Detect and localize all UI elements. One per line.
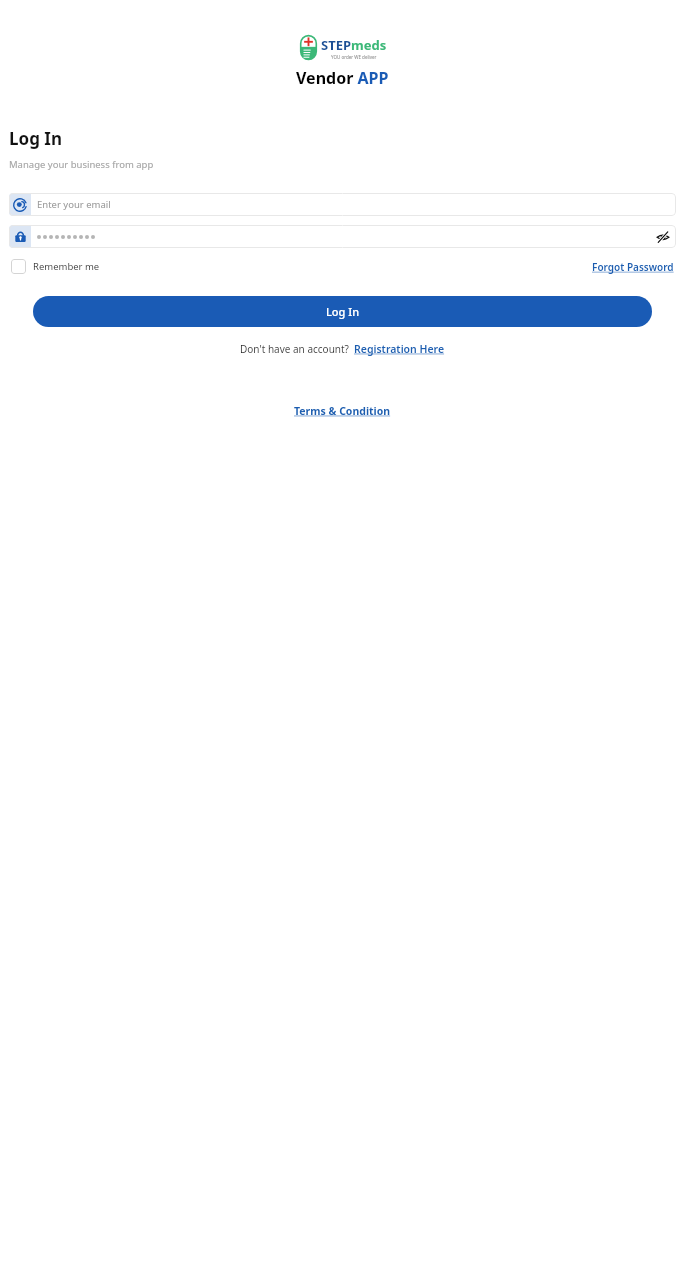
staticText: Manage your business from app bbox=[9, 158, 154, 171]
button[interactable]: Log In bbox=[33, 296, 652, 327]
button[interactable]: Password bbox=[9, 225, 676, 248]
button[interactable]: Remember me bbox=[11, 259, 100, 274]
button[interactable]: Forgot Password bbox=[592, 260, 674, 274]
button[interactable]: Registration Here bbox=[354, 342, 445, 356]
staticText: Don't have an account? bbox=[240, 342, 349, 356]
button[interactable]: Show password bbox=[653, 227, 672, 246]
staticText: Forgot Password bbox=[592, 260, 674, 274]
other: Password bbox=[9, 225, 31, 248]
staticText: STEPmeds bbox=[321, 36, 387, 54]
button[interactable]: Email bbox=[9, 193, 676, 216]
other: Email bbox=[9, 193, 31, 216]
button[interactable]: Terms & Condition bbox=[294, 404, 391, 418]
staticText: Log In bbox=[9, 127, 62, 150]
staticText: Vendor APP bbox=[296, 67, 389, 89]
staticText: Remember me bbox=[33, 260, 100, 273]
staticText: Log In bbox=[326, 304, 360, 319]
staticText: Enter your email bbox=[37, 198, 111, 211]
staticText: Terms & Condition bbox=[294, 404, 391, 418]
staticText: Registration Here bbox=[354, 342, 445, 356]
staticText: YOU order WE deliver bbox=[331, 54, 377, 60]
